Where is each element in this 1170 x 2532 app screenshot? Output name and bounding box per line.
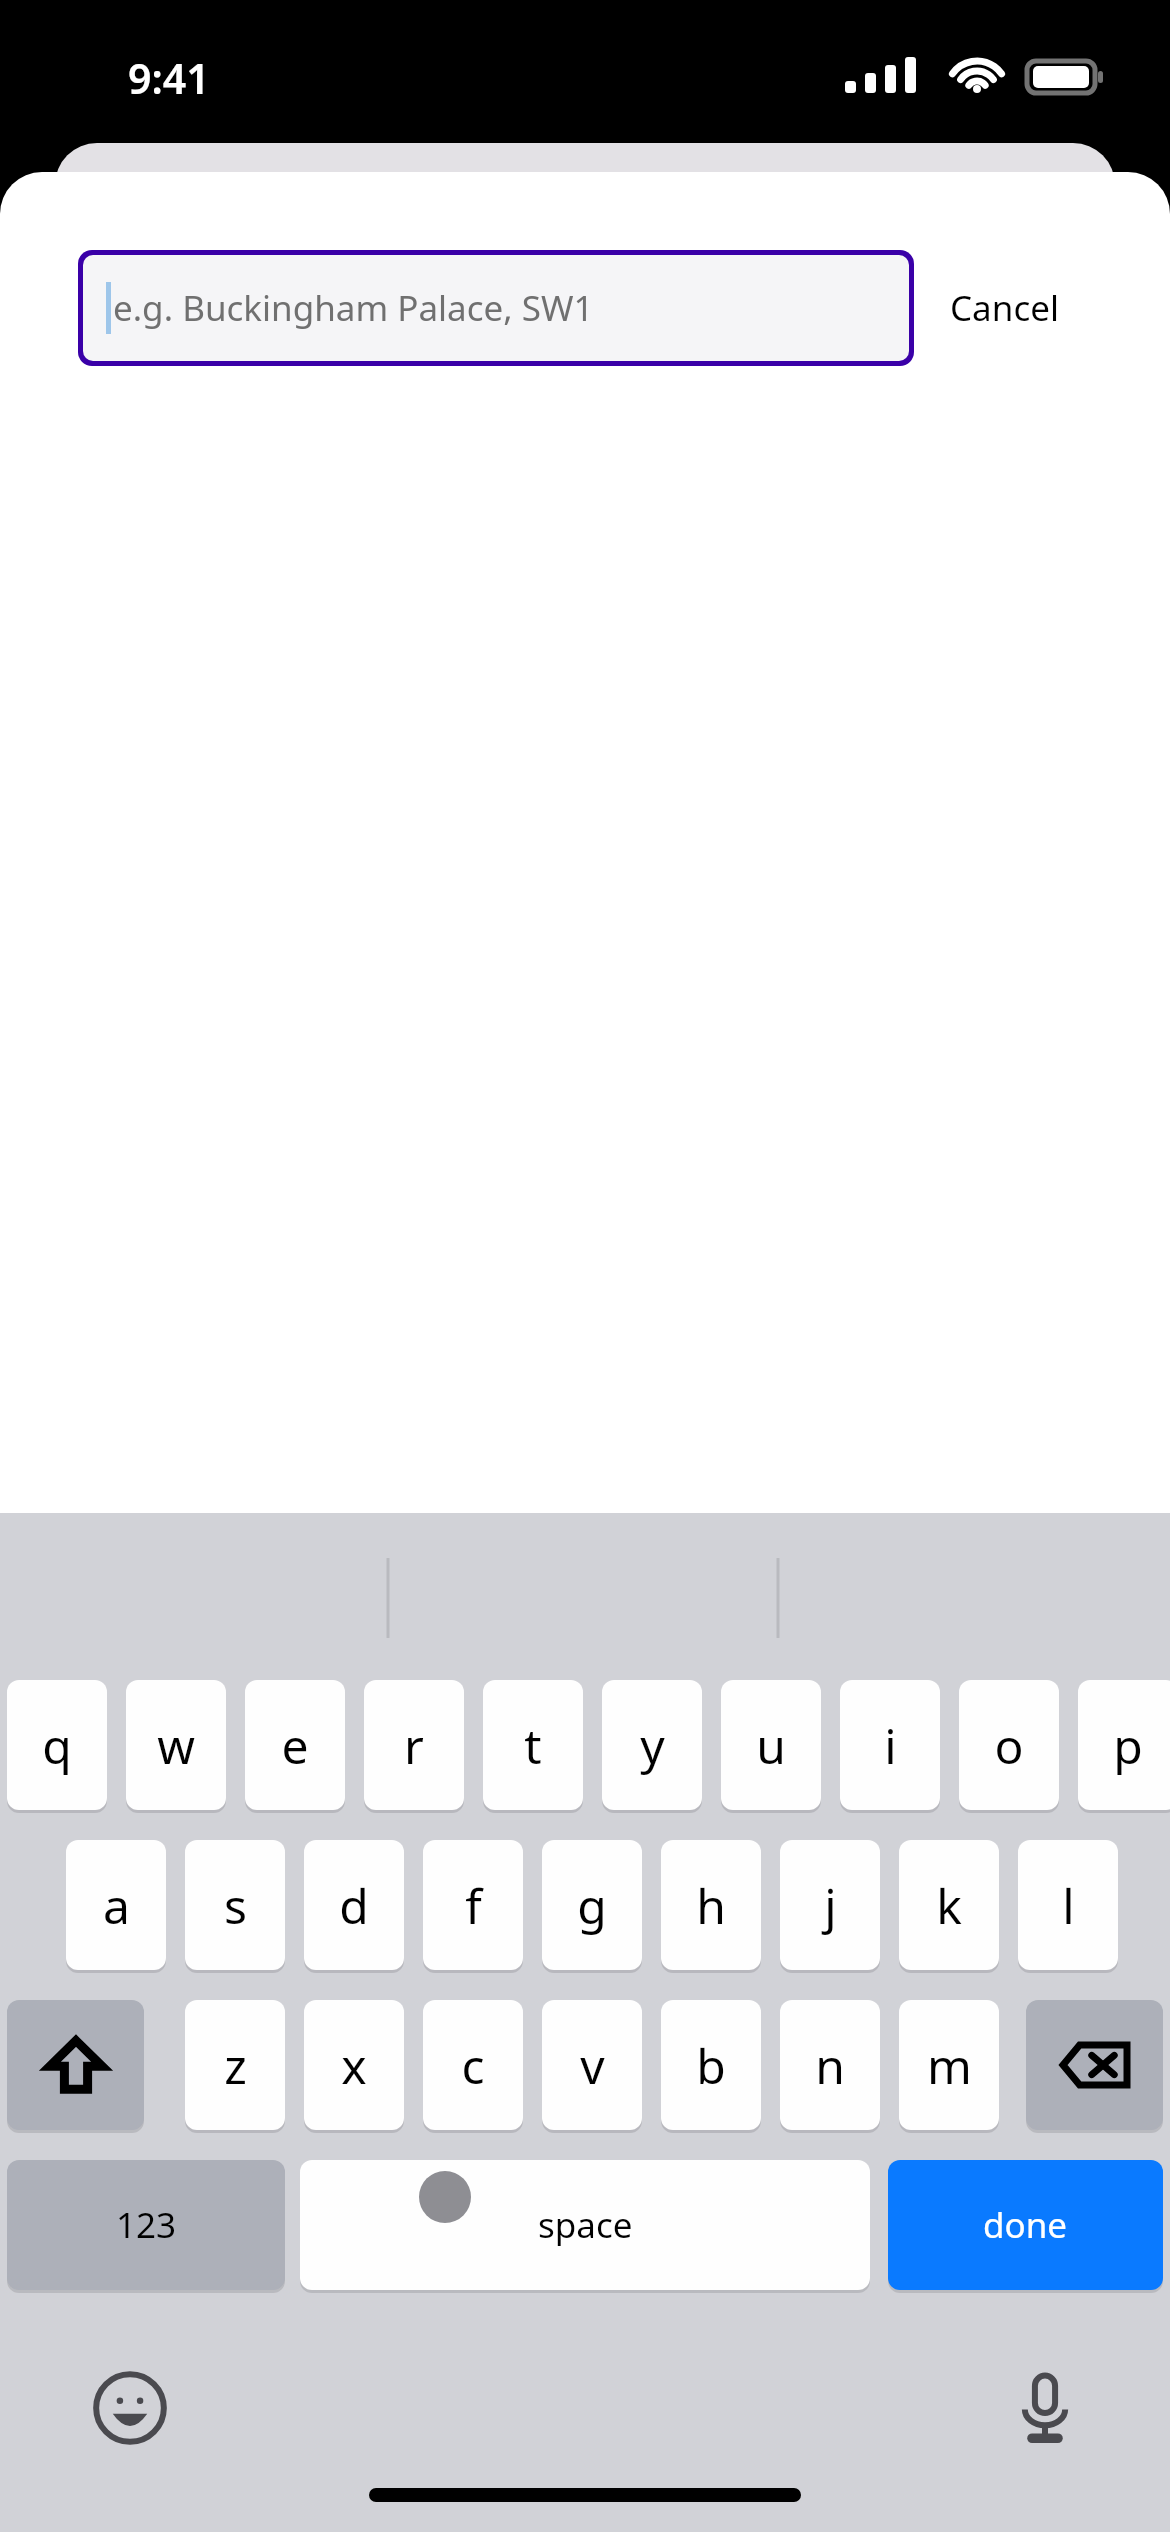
- button[interactable]: b: [661, 2000, 761, 2130]
- staticText: n: [815, 2033, 845, 2098]
- button[interactable]: f: [423, 1840, 523, 1970]
- staticText: g: [577, 1873, 607, 1938]
- staticText: e.g. Buckingham Palace, SW1: [113, 284, 594, 332]
- staticText: space: [538, 2201, 633, 2249]
- staticText: e: [281, 1713, 309, 1778]
- staticText: 9:41: [128, 50, 210, 106]
- button[interactable]: i: [840, 1680, 940, 1810]
- button[interactable]: y: [602, 1680, 702, 1810]
- button[interactable]: w: [126, 1680, 226, 1810]
- staticText: f: [465, 1873, 482, 1938]
- button[interactable]: j: [780, 1840, 880, 1970]
- button[interactable]: e.g. Buckingham Palace, SW1: [83, 255, 909, 361]
- staticText: o: [994, 1713, 1024, 1778]
- button[interactable]: Emoji keyboard: [80, 2358, 180, 2458]
- button[interactable]: c: [423, 2000, 523, 2130]
- staticText: m: [927, 2033, 972, 2098]
- button[interactable]: d: [304, 1840, 404, 1970]
- button[interactable]: g: [542, 1840, 642, 1970]
- staticText: r: [404, 1713, 424, 1778]
- button[interactable]: p: [1078, 1680, 1170, 1810]
- staticText: i: [884, 1713, 897, 1778]
- staticText: h: [696, 1873, 726, 1938]
- staticText: done: [983, 2201, 1068, 2249]
- button[interactable]: l: [1018, 1840, 1118, 1970]
- staticText: y: [640, 1713, 665, 1778]
- button[interactable]: x: [304, 2000, 404, 2130]
- staticText: z: [224, 2033, 247, 2098]
- button[interactable]: t: [483, 1680, 583, 1810]
- button[interactable]: 123: [7, 2160, 285, 2290]
- staticText: c: [461, 2033, 485, 2098]
- staticText: u: [756, 1713, 786, 1778]
- button[interactable]: space: [300, 2160, 870, 2290]
- button[interactable]: q: [7, 1680, 107, 1810]
- button[interactable]: done: [888, 2160, 1163, 2290]
- staticText: s: [224, 1873, 247, 1938]
- staticText: a: [103, 1873, 130, 1938]
- staticText: t: [524, 1713, 542, 1778]
- button[interactable]: o: [959, 1680, 1059, 1810]
- button[interactable]: r: [364, 1680, 464, 1810]
- staticText: j: [824, 1873, 837, 1938]
- button[interactable]: u: [721, 1680, 821, 1810]
- staticText: w: [157, 1713, 195, 1778]
- button[interactable]: s: [185, 1840, 285, 1970]
- button[interactable]: k: [899, 1840, 999, 1970]
- staticText: p: [1113, 1713, 1143, 1778]
- button[interactable]: Cancel: [942, 272, 1067, 344]
- staticText: Cancel: [950, 284, 1059, 332]
- button[interactable]: n: [780, 2000, 880, 2130]
- staticText: b: [696, 2033, 726, 2098]
- button[interactable]: z: [185, 2000, 285, 2130]
- staticText: l: [1062, 1873, 1075, 1938]
- button[interactable]: m: [899, 2000, 999, 2130]
- button[interactable]: v: [542, 2000, 642, 2130]
- button[interactable]: Backspace: [1026, 2000, 1163, 2130]
- staticText: v: [580, 2033, 605, 2098]
- button[interactable]: Shift: [7, 2000, 144, 2130]
- button[interactable]: e: [245, 1680, 345, 1810]
- button[interactable]: h: [661, 1840, 761, 1970]
- button[interactable]: a: [66, 1840, 166, 1970]
- staticText: 123: [116, 2201, 177, 2249]
- staticText: q: [42, 1713, 72, 1778]
- staticText: k: [936, 1873, 962, 1938]
- staticText: x: [341, 2033, 367, 2098]
- button[interactable]: Dictation: [995, 2358, 1095, 2458]
- staticText: d: [339, 1873, 369, 1938]
